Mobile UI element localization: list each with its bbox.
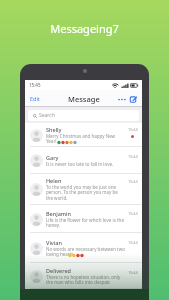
button[interactable]: Search	[28, 110, 139, 121]
button[interactable]: Shelly	[25, 123, 142, 147]
button[interactable]: Compose new message	[128, 94, 138, 104]
staticText: Delivered	[46, 267, 71, 274]
staticText: Gary	[46, 154, 59, 161]
button[interactable]: More options	[117, 94, 127, 104]
staticText: Merry Christmas and happy New Year!	[46, 133, 125, 145]
staticText: 15:45	[29, 82, 41, 88]
staticText: 15:44	[128, 179, 138, 184]
button[interactable]: Vivian	[25, 233, 142, 263]
staticText: 15:44	[128, 211, 138, 216]
staticText: Helen	[46, 177, 62, 184]
button[interactable]: Helen	[25, 174, 142, 205]
staticText: No words are necessary between two lovin…	[46, 246, 125, 258]
staticText: Messageing7	[0, 21, 169, 36]
button[interactable]: Gary	[25, 147, 142, 174]
staticText: 15:44	[128, 270, 138, 275]
button[interactable]: Benjamin	[25, 205, 142, 233]
staticText: Vivian	[46, 239, 62, 246]
staticText: 15:44	[128, 240, 138, 245]
staticText: There is no hopeless situation, only the…	[46, 274, 125, 286]
staticText: Search	[39, 112, 55, 119]
staticText: Life is the flower for which love is the…	[46, 217, 125, 229]
staticText: To the world you may be just one person.…	[46, 184, 125, 202]
button[interactable]: Delivered	[25, 263, 142, 289]
staticText: Message	[68, 94, 100, 104]
button[interactable]: Edit	[30, 95, 40, 102]
staticText: Benjamin	[46, 210, 71, 217]
staticText: Shelly	[46, 126, 62, 133]
staticText: 15:44	[128, 127, 138, 132]
staticText: 15:44	[128, 154, 138, 159]
staticText: It is never too late to fall in love.	[46, 161, 114, 167]
